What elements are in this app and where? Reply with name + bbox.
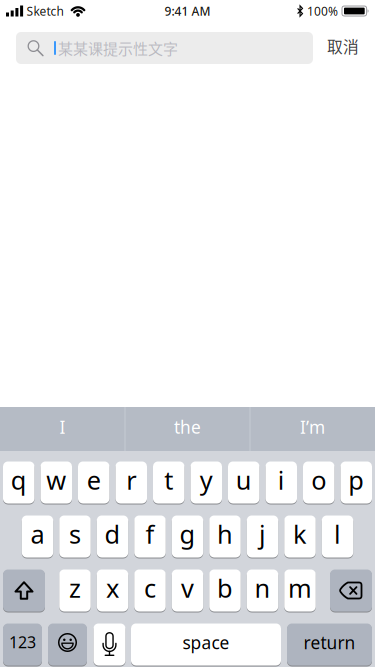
staticText: 某某课提示性文字 — [58, 37, 178, 59]
staticText: h — [217, 517, 233, 551]
button[interactable]: Search — [16, 32, 313, 64]
staticText: space — [182, 631, 229, 654]
staticText: v — [181, 571, 194, 605]
staticText: m — [288, 571, 312, 605]
button[interactable]: h — [209, 515, 241, 558]
button[interactable]: u — [228, 461, 259, 504]
staticText: 取消 — [327, 35, 359, 57]
button[interactable]: a — [22, 515, 53, 558]
staticText: return — [303, 631, 355, 654]
staticText: j — [259, 517, 266, 551]
staticText: g — [179, 517, 195, 551]
button[interactable]: Delete — [330, 569, 372, 612]
staticText: the — [174, 415, 201, 438]
staticText: l — [334, 517, 341, 551]
button[interactable]: o — [303, 461, 334, 504]
button[interactable]: I’m — [250, 407, 375, 451]
button[interactable]: x — [97, 569, 128, 612]
button[interactable]: k — [284, 515, 316, 558]
staticText: 100% — [307, 3, 338, 19]
staticText: o — [311, 463, 326, 497]
button[interactable]: 取消 — [327, 35, 359, 57]
button[interactable]: b — [209, 569, 241, 612]
staticText: a — [30, 517, 44, 551]
button[interactable]: s — [59, 515, 91, 558]
button[interactable]: n — [247, 569, 278, 612]
button[interactable]: y — [190, 461, 222, 504]
button[interactable]: m — [284, 569, 316, 612]
staticText: u — [236, 463, 252, 497]
button[interactable]: l — [322, 515, 353, 558]
staticText: c — [144, 571, 156, 605]
staticText: y — [200, 463, 213, 497]
button[interactable]: w — [40, 461, 72, 504]
button[interactable]: I — [0, 407, 125, 451]
staticText: 123 — [9, 631, 36, 653]
staticText: x — [106, 571, 119, 605]
button[interactable]: the — [125, 407, 250, 451]
staticText: e — [87, 463, 101, 497]
button[interactable]: Emoji — [48, 623, 87, 666]
staticText: r — [126, 463, 136, 497]
button[interactable]: g — [172, 515, 203, 558]
button[interactable]: d — [97, 515, 128, 558]
button[interactable]: c — [134, 569, 166, 612]
button[interactable]: t — [153, 461, 184, 504]
button[interactable]: r — [115, 461, 147, 504]
button[interactable]: e — [78, 461, 109, 504]
staticText: t — [164, 463, 173, 497]
staticText: w — [46, 463, 66, 497]
button[interactable]: Dictate — [93, 623, 125, 666]
button[interactable]: 123 — [3, 623, 42, 666]
staticText: d — [104, 517, 120, 551]
staticText: s — [69, 517, 81, 551]
staticText: b — [217, 571, 233, 605]
staticText: Sketch — [26, 3, 63, 19]
button[interactable]: f — [134, 515, 166, 558]
staticText: q — [11, 463, 27, 497]
staticText: k — [293, 517, 307, 551]
button[interactable]: Shift — [3, 569, 45, 612]
button[interactable]: p — [340, 461, 372, 504]
staticText: I’m — [300, 415, 325, 438]
button[interactable]: return — [287, 623, 372, 666]
button[interactable]: q — [3, 461, 34, 504]
staticText: n — [254, 571, 270, 605]
staticText: z — [69, 571, 81, 605]
button[interactable]: space — [131, 623, 281, 666]
staticText: f — [145, 517, 154, 551]
staticText: p — [348, 463, 364, 497]
staticText: I — [59, 415, 65, 438]
button[interactable]: v — [172, 569, 203, 612]
staticText: 9:41 AM — [164, 3, 210, 19]
button[interactable]: i — [265, 461, 297, 504]
staticText: i — [278, 463, 285, 497]
button[interactable]: j — [247, 515, 278, 558]
button[interactable]: z — [59, 569, 91, 612]
